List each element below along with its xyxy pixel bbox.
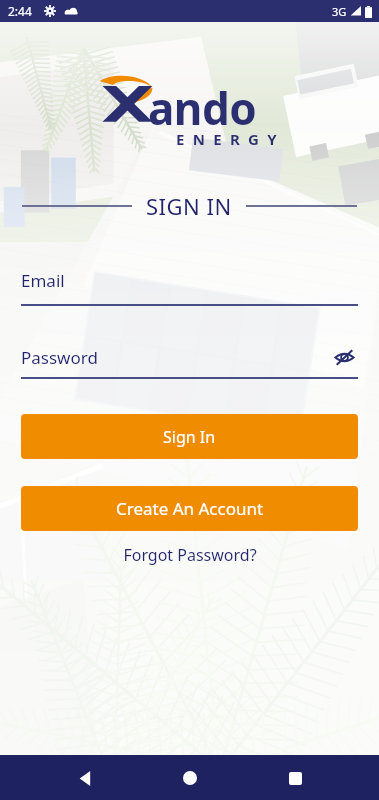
button[interactable]: Back — [63, 757, 105, 799]
button[interactable]: Home — [169, 757, 211, 799]
staticText: 2:44 — [8, 3, 32, 19]
staticText: Create An Account — [116, 497, 264, 520]
staticText: Password — [21, 346, 98, 369]
staticText: E N E R G Y — [176, 129, 279, 149]
button[interactable]: Forgot Password? — [115, 540, 265, 570]
staticText: Sign In — [163, 426, 216, 448]
button[interactable]: Email — [21, 269, 358, 306]
staticText: SIGN IN — [146, 191, 232, 221]
staticText: ando — [148, 78, 257, 128]
staticText: Email — [21, 269, 65, 292]
staticText: Forgot Password? — [123, 544, 257, 566]
button[interactable]: Create An Account — [21, 486, 358, 531]
button[interactable]: Show password — [330, 343, 358, 371]
staticText: 3G — [332, 4, 347, 19]
button[interactable]: Sign In — [21, 414, 358, 459]
button[interactable]: Password — [21, 343, 358, 379]
button[interactable]: Recent apps — [274, 757, 316, 799]
